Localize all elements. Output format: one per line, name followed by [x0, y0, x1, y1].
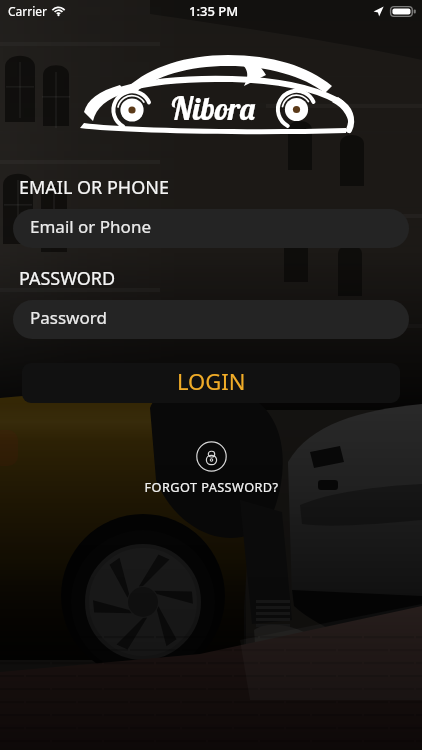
button[interactable]: Password [13, 300, 409, 339]
staticText: Email or Phone [30, 215, 151, 238]
button[interactable]: Email or Phone [13, 209, 409, 248]
button[interactable]: LOGIN [22, 363, 400, 403]
staticText: Carrier [8, 3, 48, 19]
staticText: PASSWORD [19, 266, 116, 291]
staticText: EMAIL OR PHONE [19, 175, 169, 200]
staticText: Nibora [170, 89, 257, 128]
staticText: Password [30, 306, 107, 329]
button[interactable]: Forgot password [0, 441, 422, 495]
other: Forgot password [196, 441, 227, 472]
staticText: FORGOT PASSWORD? [144, 478, 279, 495]
staticText: 1:35 PM [189, 2, 239, 20]
staticText: LOGIN [177, 366, 246, 396]
